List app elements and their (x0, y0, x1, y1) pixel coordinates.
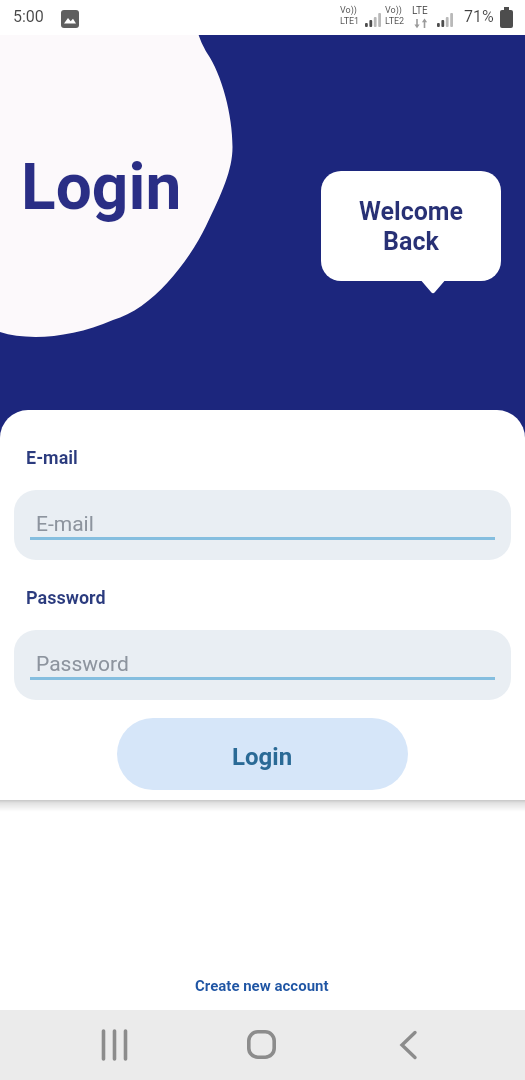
staticText: E-mail (26, 447, 226, 468)
staticText: Welcome Back (359, 197, 463, 256)
staticText: 71% (464, 7, 494, 26)
button[interactable] (384, 1020, 436, 1070)
staticText: LTE2 (385, 16, 405, 27)
staticText: 5:00 (13, 7, 44, 26)
button[interactable]: Password (14, 630, 511, 700)
button[interactable] (90, 1020, 142, 1070)
button[interactable]: Login (117, 718, 408, 790)
staticText: Login (232, 743, 293, 771)
staticText: Create new account (195, 977, 329, 995)
staticText: Vo)) (385, 5, 402, 16)
staticText: Password (36, 652, 129, 677)
staticText: E-mail (36, 512, 94, 537)
button[interactable] (236, 1020, 288, 1070)
staticText: Login (21, 150, 261, 225)
staticText: Vo)) (340, 5, 357, 16)
staticText: LTE (412, 5, 428, 17)
button[interactable]: E-mail (14, 490, 511, 560)
staticText: Password (26, 587, 226, 608)
staticText: LTE1 (340, 16, 360, 27)
button[interactable]: Create new account (97, 968, 427, 1004)
